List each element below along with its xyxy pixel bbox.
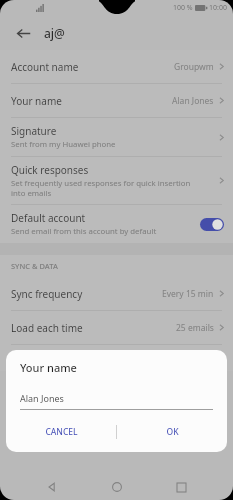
staticText: Quick responses [11,163,89,177]
staticText: 25 emails [176,322,214,334]
button[interactable]: CANCEL [6,420,116,444]
button[interactable]: Recent apps [169,475,193,499]
staticText: Sent from my Huawei phone [11,139,116,150]
button[interactable]: OK [117,420,227,444]
staticText: Every 15 min [162,288,214,300]
staticText: SYNC & DATA [11,261,58,271]
staticText: Signature [11,124,57,138]
button[interactable]: Back [40,475,64,499]
staticText: OK [166,426,179,438]
button[interactable]: Sync Email [0,345,233,371]
staticText: Account name [11,60,174,74]
staticText: Groupwm [174,61,214,73]
button[interactable]: Account name [0,50,233,83]
staticText: Set frequently used responses for quick … [11,178,191,198]
staticText: Alan Jones [20,392,64,404]
button[interactable]: Load each time [0,311,233,344]
staticText: 100 % [173,3,193,13]
button[interactable]: Default account [0,205,233,243]
staticText: Your name [11,94,172,108]
staticText: Alan Jones [172,95,214,107]
button[interactable]: Sync frequency [0,277,233,310]
button[interactable]: Toggle Default account [200,218,224,231]
staticText: Load each time [11,321,176,335]
button[interactable]: Your name [0,84,233,117]
button[interactable]: Quick responses [0,157,233,204]
staticText: CANCEL [45,426,78,438]
button[interactable]: Home [105,475,129,499]
staticText: Send email from this account by default [11,226,157,237]
staticText: aj@ [44,25,65,41]
staticText: Default account [11,211,86,225]
button[interactable]: Back [10,20,36,46]
staticText: Your name [20,360,77,375]
staticText: 10:00 [209,3,227,13]
staticText: Sync frequency [11,287,162,301]
button[interactable]: Signature [0,118,233,156]
staticText: Sync Email [11,351,61,365]
